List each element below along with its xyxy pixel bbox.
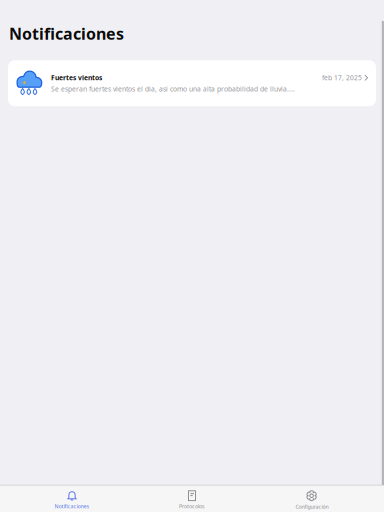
staticText: Notificaciones xyxy=(9,23,124,44)
staticText: Protocolos xyxy=(179,503,205,510)
staticText: Configuración xyxy=(295,503,328,510)
staticText: Fuertes vientos xyxy=(51,73,102,82)
button[interactable]: Notificaciones xyxy=(12,487,132,512)
staticText: Se esperan fuertes vientos el dia, asi c… xyxy=(51,84,295,93)
staticText: Notificaciones xyxy=(54,503,89,510)
button[interactable]: Protocolos xyxy=(132,487,252,512)
staticText: feb 17, 2025 xyxy=(322,73,362,82)
button[interactable]: Configuración xyxy=(252,487,372,512)
button[interactable]: Fuertes vientos xyxy=(8,60,376,106)
